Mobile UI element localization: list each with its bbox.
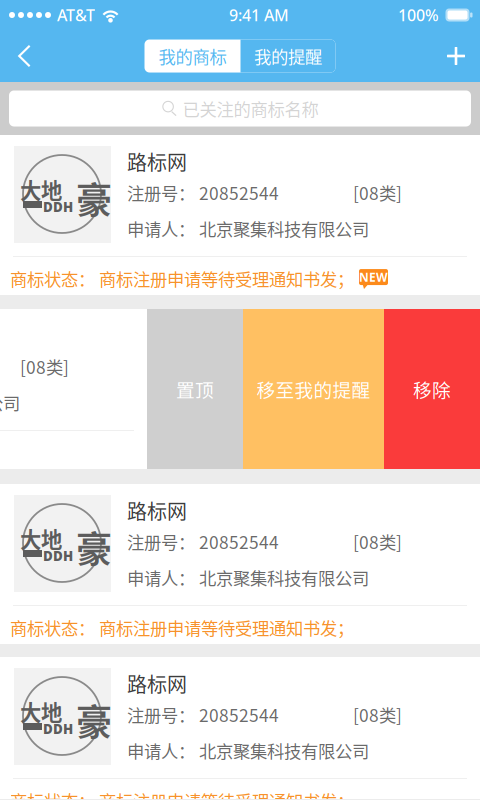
staticText: 申请人： 北京聚集科技有限公司: [127, 565, 369, 590]
button[interactable]: 移至我的提醒: [243, 309, 384, 469]
staticText: 置顶: [176, 375, 214, 402]
staticText: 注册号： 20852544: [127, 180, 279, 205]
staticText: 豪: [76, 694, 112, 746]
staticText: 大地: [20, 174, 62, 205]
staticText: 路标网: [127, 669, 187, 698]
button[interactable]: 我的提醒: [240, 39, 335, 72]
staticText: [08类]: [20, 354, 69, 379]
button[interactable]: 大地: [0, 135, 480, 295]
staticText: DDH: [43, 720, 73, 738]
staticText: [08类]: [353, 180, 402, 205]
staticText: 注册号： 20852544: [127, 529, 279, 554]
staticText: [08类]: [353, 529, 402, 554]
staticText: 公司: [0, 390, 20, 415]
staticText: 大地: [20, 696, 62, 727]
staticText: 商标状态： 商标注册申请等待受理通知书发；: [10, 266, 354, 291]
staticText: 路标网: [127, 147, 187, 176]
button[interactable]: Add: [434, 34, 478, 78]
staticText: [08类]: [353, 702, 402, 727]
staticText: 100%: [398, 4, 439, 26]
button[interactable]: Back: [2, 34, 46, 78]
staticText: 移除: [413, 375, 451, 402]
staticText: NEW: [359, 269, 388, 285]
staticText: 我的商标: [158, 43, 226, 69]
staticText: DDH: [43, 198, 73, 216]
staticText: 商标状态： 商标注册申请等待受理通知书发；: [10, 788, 354, 800]
staticText: AT&T: [57, 4, 95, 26]
staticText: 大地: [20, 523, 62, 554]
button[interactable]: 大地: [0, 657, 480, 800]
staticText: 豪: [76, 521, 112, 573]
staticText: 商标状态： 商标注册申请等待受理通知书发；: [10, 615, 354, 640]
staticText: 申请人： 北京聚集科技有限公司: [127, 216, 369, 241]
staticText: 豪: [76, 172, 112, 224]
button[interactable]: 移除: [384, 309, 480, 469]
staticText: 9:41 AM: [229, 4, 289, 26]
staticText: 路标网: [127, 496, 187, 525]
button[interactable]: 置顶: [147, 309, 243, 469]
staticText: 申请人： 北京聚集科技有限公司: [127, 738, 369, 763]
button[interactable]: 大地: [0, 484, 480, 644]
staticText: 我的提醒: [254, 43, 322, 69]
staticText: DDH: [43, 547, 73, 565]
staticText: 移至我的提醒: [256, 375, 370, 402]
button[interactable]: 已关注的商标名称: [9, 90, 471, 126]
staticText: 已关注的商标名称: [182, 96, 318, 121]
staticText: 注册号： 20852544: [127, 702, 279, 727]
button[interactable]: 我的商标: [144, 39, 240, 72]
